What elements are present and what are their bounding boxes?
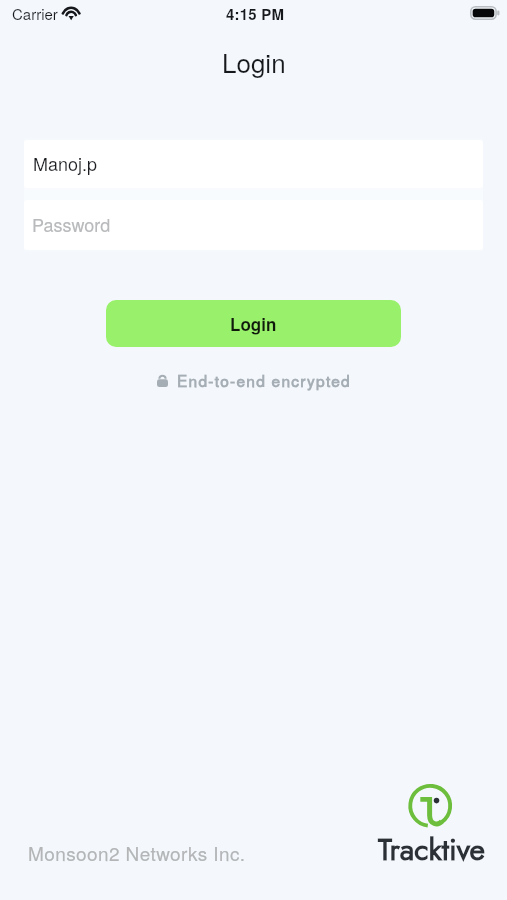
staticText: 4:15 PM (226, 3, 285, 24)
staticText: Monsoon2 Networks Inc. (28, 839, 246, 866)
staticText: Tracktive (378, 828, 486, 871)
staticText: Login (222, 43, 286, 80)
other: Wi-Fi (59, 4, 83, 22)
staticText: Carrier (12, 3, 58, 24)
staticText: Password (32, 211, 111, 237)
button[interactable]: Login (106, 300, 401, 347)
other: Tracktive logo (408, 783, 454, 829)
other: Battery (470, 6, 500, 20)
button[interactable]: Manoj.p (24, 140, 483, 188)
button[interactable]: Password (24, 200, 483, 250)
staticText: End-to-end encrypted (177, 369, 351, 391)
staticText: Manoj.p (33, 150, 98, 176)
staticText: Login (230, 312, 277, 336)
